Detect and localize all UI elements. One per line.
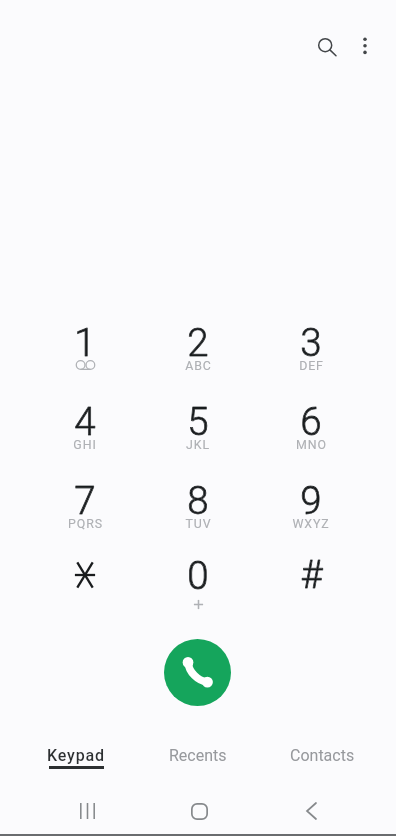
staticText: TUV [185,516,212,531]
staticText: 9 [300,478,322,523]
staticText: Recents [169,746,227,765]
button[interactable]: Back [277,787,345,835]
staticText: # [300,553,323,598]
staticText: 4 [74,399,96,444]
button[interactable]: Call [164,639,231,706]
button[interactable]: 9 [261,477,361,551]
staticText: 0 [187,553,209,598]
staticText: 2 [187,320,209,365]
button[interactable]: Home [165,787,233,835]
button[interactable]: 3 [261,319,361,393]
staticText: 7 [74,478,96,523]
button[interactable]: 0 [148,552,248,626]
staticText: 1 [74,320,96,365]
staticText: 8 [187,478,209,523]
staticText: 9 [300,478,322,523]
button[interactable]: Keypad [17,738,135,778]
staticText: 4 [74,399,96,444]
button[interactable]: # [261,552,361,626]
staticText: WXYZ [292,516,330,531]
staticText: ABC [185,358,212,373]
button[interactable]: Recents [139,738,257,778]
button[interactable]: 5 [148,398,248,472]
staticText: 1 [74,320,96,365]
button[interactable]: Contacts [263,738,381,778]
button[interactable]: 2 [148,319,248,393]
staticText: 8 [187,478,209,523]
staticText: DEF [299,358,324,373]
button[interactable]: 8 [148,477,248,551]
button[interactable]: 6 [261,398,361,472]
button[interactable]: Search [306,26,350,70]
staticText: JKL [186,437,210,452]
staticText: 7 [74,478,96,523]
staticText: Contacts [290,746,355,765]
staticText: # [300,553,323,598]
staticText: 6 [300,399,322,444]
button[interactable]: 4 [35,398,135,472]
staticText: 0 [187,553,209,598]
button[interactable]: 7 [35,477,135,551]
staticText: MNO [296,437,327,452]
staticText: Keypad [47,746,105,765]
button[interactable]: More options [343,23,387,67]
staticText: 5 [187,399,209,444]
button[interactable]: 1 [35,319,135,393]
staticText: GHI [73,437,97,452]
staticText: PQRS [68,516,103,531]
button[interactable]: Star [35,552,135,626]
staticText: 6 [300,399,322,444]
staticText: 3 [300,320,322,365]
staticText: 5 [187,399,209,444]
button[interactable]: Recent apps [53,787,121,835]
staticText: 3 [300,320,322,365]
staticText: 2 [187,320,209,365]
